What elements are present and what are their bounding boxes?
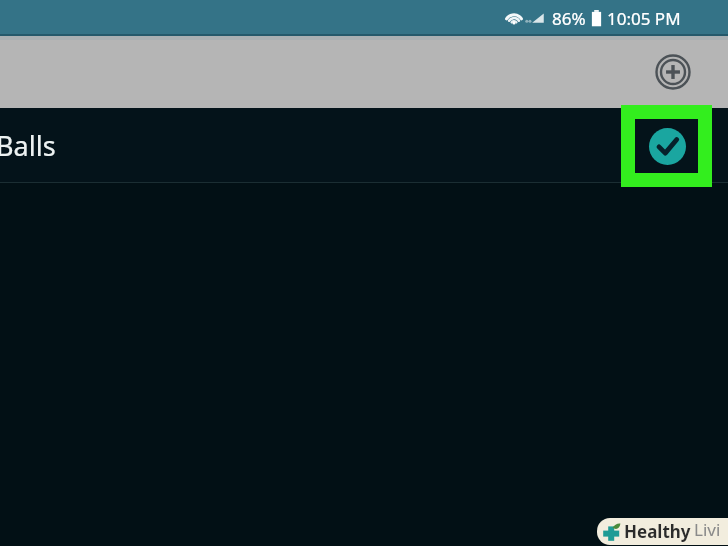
button[interactable]: Add (645, 44, 701, 100)
button[interactable]: Balls (0, 108, 728, 183)
staticText: 86% (552, 7, 586, 30)
staticText: Healthy (624, 520, 691, 543)
staticText: Living (694, 518, 728, 545)
staticText: Balls (0, 127, 56, 164)
button[interactable]: Selected (639, 118, 695, 174)
staticText: 10:05 PM (607, 7, 681, 30)
